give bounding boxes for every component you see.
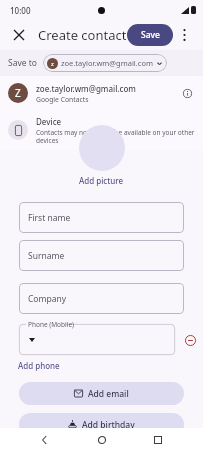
staticText: Phone (Mobile) <box>28 320 75 329</box>
button[interactable]: Info <box>179 85 195 101</box>
button[interactable]: Add birthday <box>19 413 184 436</box>
staticText: Save <box>141 29 160 41</box>
staticText: Company <box>28 293 67 305</box>
staticText: Surname <box>28 250 65 262</box>
button[interactable]: Recent apps <box>147 429 169 451</box>
staticText: zoe.taylor.wm@gmail.com <box>61 58 153 68</box>
staticText: Device <box>36 116 62 127</box>
staticText: Add picture <box>79 175 124 186</box>
staticText: Create contact <box>38 26 127 44</box>
staticText: Google Contacts <box>36 95 89 104</box>
button[interactable]: Add email <box>19 382 184 405</box>
button[interactable]: Home <box>91 429 113 451</box>
button[interactable]: z <box>43 54 167 72</box>
button[interactable]: Remove phone <box>181 331 199 349</box>
button[interactable]: Z <box>0 76 203 110</box>
button[interactable]: Company <box>19 283 184 314</box>
staticText: Contacts may not sync or be available on… <box>36 128 195 145</box>
staticText: 10:00 <box>10 5 31 16</box>
staticText: zoe.taylor.wm@gmail.com <box>36 83 136 94</box>
button[interactable]: First name <box>19 202 184 233</box>
staticText: Add birthday <box>82 419 135 431</box>
staticText: Add email <box>88 388 129 400</box>
button[interactable]: Surname <box>19 240 184 271</box>
staticText: First name <box>28 212 71 224</box>
button[interactable]: More options <box>173 24 195 46</box>
button[interactable]: Device <box>0 110 203 150</box>
button[interactable]: Phone type <box>25 333 39 347</box>
button[interactable]: Add picture <box>75 174 128 187</box>
button[interactable]: Back <box>34 429 56 451</box>
staticText: Z <box>15 86 21 100</box>
staticText: Add phone <box>18 360 60 371</box>
staticText: z <box>51 60 54 68</box>
staticText: Save to <box>8 57 37 69</box>
button[interactable]: Close <box>8 24 30 46</box>
button[interactable]: Add phone <box>16 359 62 372</box>
button[interactable]: Save <box>127 24 173 46</box>
